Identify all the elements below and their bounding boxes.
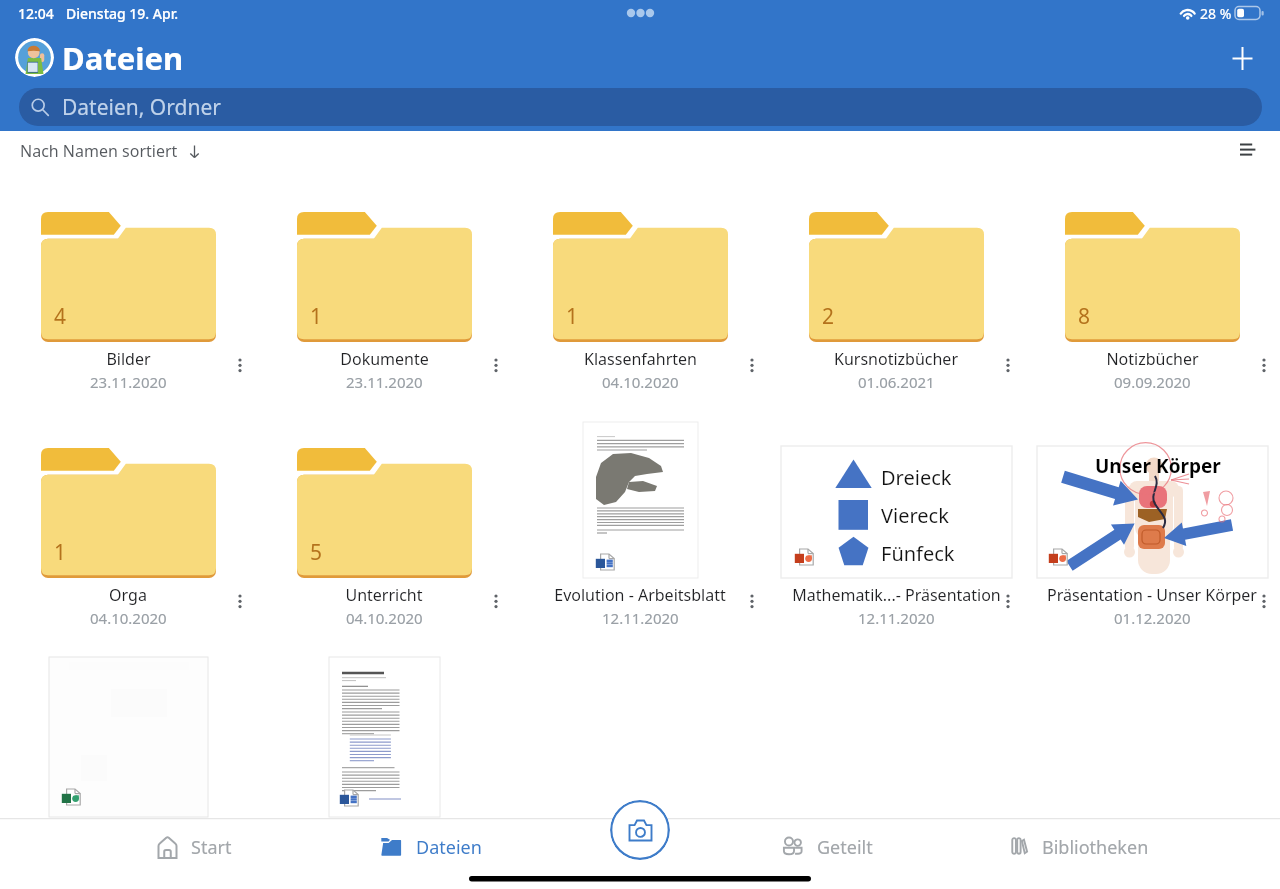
button[interactable]: Weitere Optionen [225, 351, 255, 381]
staticText: Evolution - Arbeitsblatt [554, 584, 726, 606]
staticText: 23.11.2020 [346, 372, 423, 392]
staticText: 12:04 [18, 4, 54, 23]
button[interactable]: Weitere Optionen [1249, 351, 1279, 381]
button[interactable]: Weitere Optionen [481, 351, 511, 381]
staticText: 8 [1078, 302, 1091, 331]
button[interactable]: Start [145, 825, 242, 869]
staticText: 09.09.2020 [1114, 372, 1191, 392]
staticText: Unterricht [345, 584, 423, 606]
button[interactable]: 1 [512, 200, 768, 404]
staticText: Bibliotheken [1042, 835, 1149, 860]
button[interactable]: Hinzufügen [1219, 35, 1265, 81]
button[interactable]: 4 [0, 200, 256, 404]
button[interactable]: Geteilt [770, 825, 883, 869]
button[interactable]: Nach Namen sortiert [18, 135, 204, 167]
button[interactable]: 1 [0, 412, 256, 640]
staticText: 01.06.2021 [858, 372, 935, 392]
button[interactable]: Word-Dokument Solarstrom [329, 657, 440, 817]
staticText: 4 [54, 302, 67, 331]
staticText: Orga [109, 584, 147, 606]
button[interactable]: Unser Körper [1024, 412, 1280, 640]
staticText: 5 [310, 538, 323, 567]
staticText: 1 [566, 302, 579, 331]
button[interactable]: Dateien, Ordner [19, 88, 1262, 126]
staticText: 12.11.2020 [858, 608, 935, 628]
staticText: 12.11.2020 [602, 608, 679, 628]
staticText: Dateien [62, 37, 184, 79]
button[interactable]: 5 [256, 412, 512, 640]
button[interactable]: Weitere Optionen [1249, 587, 1279, 617]
button[interactable]: Weitere Optionen [993, 351, 1023, 381]
staticText: Dreieck [881, 464, 952, 491]
staticText: Klassenfahrten [584, 348, 697, 370]
button[interactable]: 1 [256, 200, 512, 404]
button[interactable]: Bibliotheken [995, 825, 1159, 869]
button[interactable]: Excel-Tabelle [49, 657, 208, 817]
staticText: Bilder [106, 348, 151, 370]
staticText: Fünfeck [881, 540, 955, 567]
button[interactable]: Dateien [369, 825, 492, 869]
button[interactable]: Evolution - Arbeitsblatt [512, 412, 768, 640]
staticText: Dateien, Ordner [62, 93, 221, 122]
staticText: Mathematik...- Präsentation [792, 584, 1001, 606]
staticText: 1 [54, 538, 67, 567]
staticText: Kursnotizbücher [834, 348, 958, 370]
staticText: 04.10.2020 [90, 608, 167, 628]
button[interactable]: 8 [1024, 200, 1280, 404]
button[interactable]: Kamera [610, 800, 670, 860]
staticText: Viereck [881, 502, 949, 529]
button[interactable]: Weitere Optionen [993, 587, 1023, 617]
staticText: Dienstag 19. Apr. [66, 4, 179, 23]
staticText: Dateien [416, 835, 482, 860]
staticText: 23.11.2020 [90, 372, 167, 392]
staticText: Geteilt [817, 835, 873, 860]
staticText: 28 % [1200, 4, 1232, 23]
button[interactable]: Weitere Optionen [481, 587, 511, 617]
staticText: 2 [822, 302, 835, 331]
staticText: Start [191, 835, 232, 860]
button[interactable]: 2 [768, 200, 1024, 404]
staticText: 04.10.2020 [602, 372, 679, 392]
button[interactable]: Weitere Optionen [225, 587, 255, 617]
button[interactable]: Profil [15, 38, 54, 77]
staticText: 01.12.2020 [1114, 608, 1191, 628]
staticText: Dokumente [340, 348, 429, 370]
button[interactable]: Weitere Optionen [737, 587, 767, 617]
staticText: Notizbücher [1106, 348, 1199, 370]
button[interactable]: Weitere Optionen [737, 351, 767, 381]
staticText: 1 [310, 302, 323, 331]
staticText: Unser Körper [1095, 453, 1221, 479]
button[interactable]: Dreieck [768, 412, 1024, 640]
staticText: 04.10.2020 [346, 608, 423, 628]
staticText: Nach Namen sortiert [20, 140, 178, 162]
button[interactable]: Ansicht wechseln [1228, 131, 1268, 171]
staticText: Präsentation - Unser Körper [1047, 584, 1257, 606]
